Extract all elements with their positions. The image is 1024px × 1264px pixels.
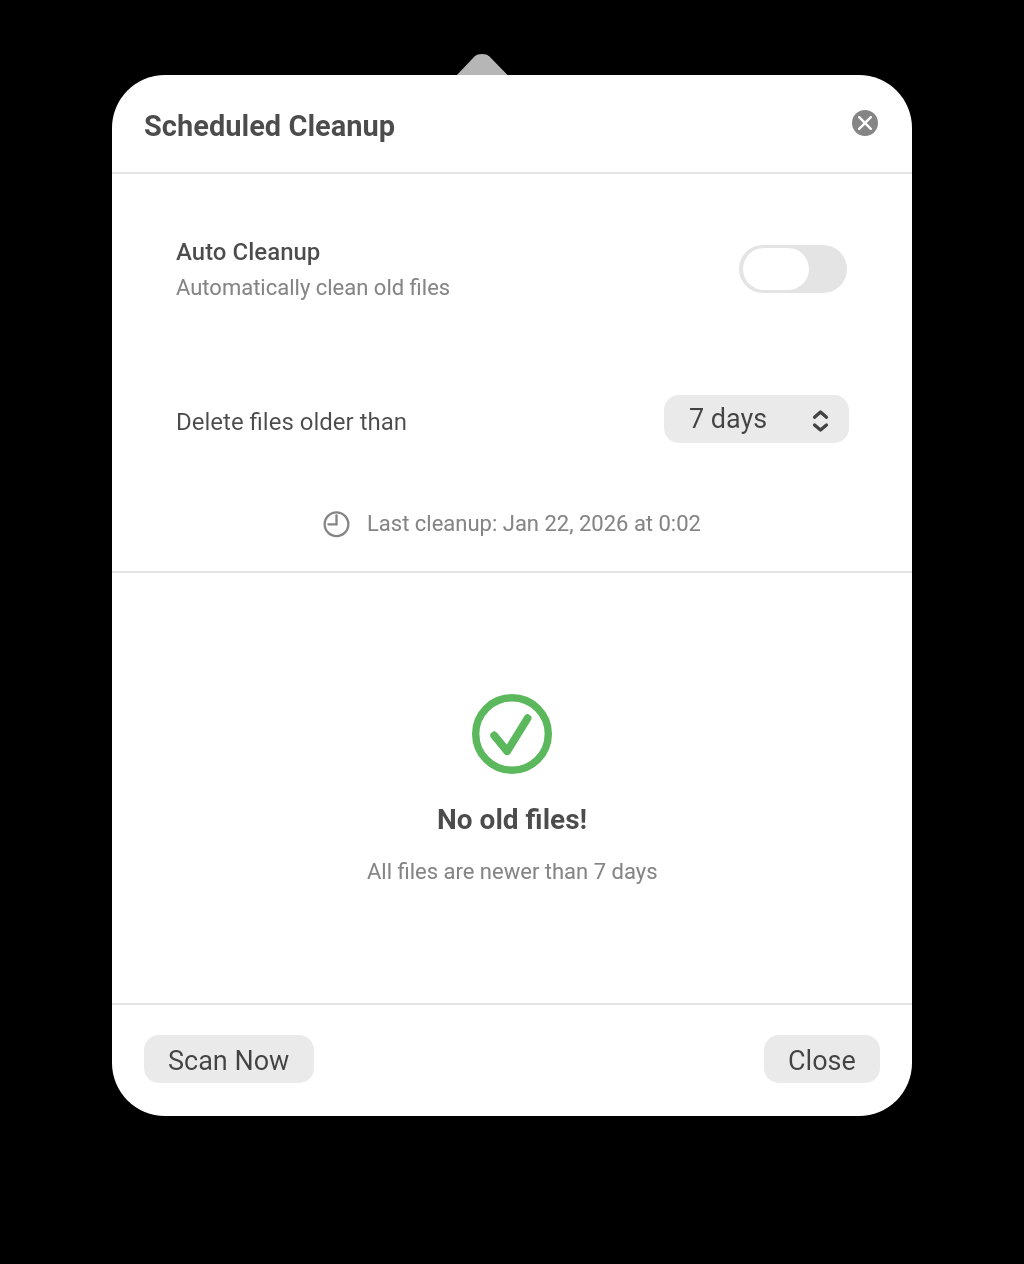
button[interactable]: Auto Cleanup toggle xyxy=(739,245,847,293)
button[interactable]: Auto Cleanup xyxy=(112,224,912,314)
button[interactable]: Delete files older than xyxy=(112,389,912,449)
button[interactable]: 7 days xyxy=(664,395,849,443)
staticText: Close xyxy=(788,1045,856,1077)
button[interactable]: Close xyxy=(764,1035,880,1083)
staticText: Automatically clean old files xyxy=(176,275,451,301)
button[interactable]: Close dialog xyxy=(852,110,878,136)
staticText: Scan Now xyxy=(168,1045,290,1077)
staticText: All files are newer than 7 days xyxy=(367,859,658,885)
staticText: 7 days xyxy=(689,403,768,435)
staticText: Delete files older than xyxy=(176,408,408,436)
staticText: No old files! xyxy=(437,803,588,836)
staticText: Last cleanup: Jan 22, 2026 at 0:02 xyxy=(367,511,701,537)
staticText: Scheduled Cleanup xyxy=(144,109,396,143)
staticText: Auto Cleanup xyxy=(176,238,321,266)
button[interactable]: Scan Now xyxy=(144,1035,314,1083)
